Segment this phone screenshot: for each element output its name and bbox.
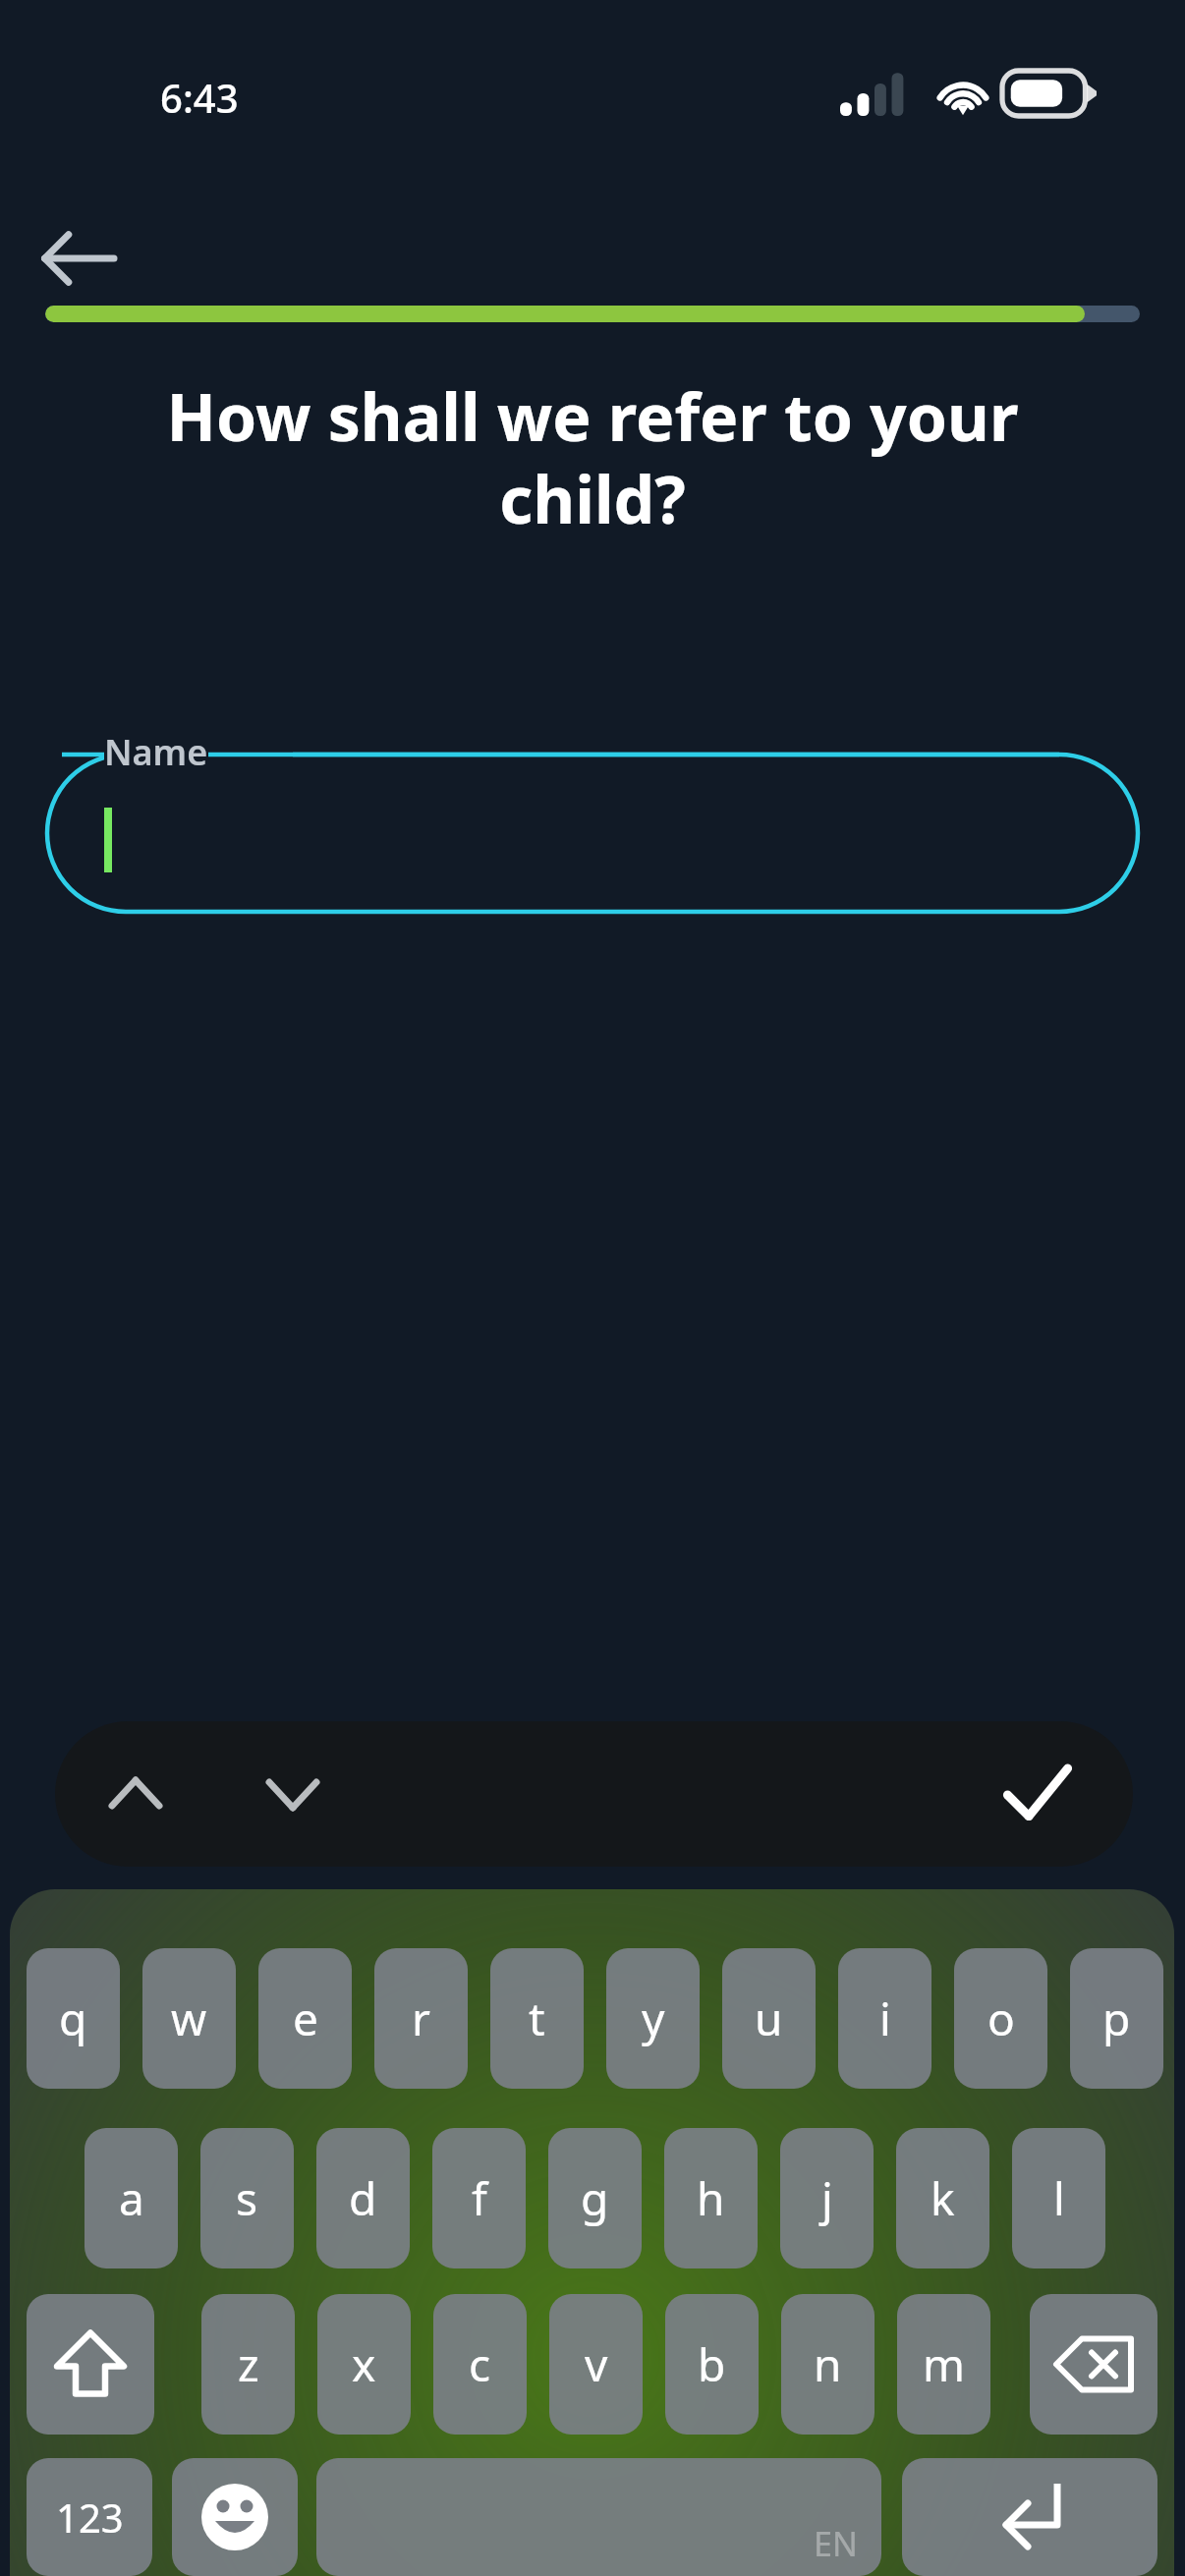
button[interactable]: y [606, 1948, 700, 2089]
button[interactable]: m [897, 2294, 990, 2435]
staticText: o [987, 1988, 1015, 2049]
staticText: b [698, 2333, 726, 2395]
button[interactable]: Space [316, 2458, 881, 2576]
button[interactable]: c [433, 2294, 527, 2435]
button[interactable]: Done [993, 1751, 1082, 1839]
button[interactable]: h [664, 2128, 758, 2268]
button[interactable]: e [258, 1948, 352, 2089]
staticText: f [472, 2167, 487, 2229]
button[interactable]: u [722, 1948, 816, 2089]
staticText: h [697, 2167, 725, 2229]
staticText: u [755, 1988, 783, 2049]
button[interactable]: Previous field [96, 1755, 175, 1833]
button[interactable]: q [27, 1948, 120, 2089]
staticText: Name [104, 728, 208, 776]
button[interactable]: d [316, 2128, 410, 2268]
staticText: g [581, 2167, 609, 2229]
staticText: j [821, 2167, 833, 2229]
button[interactable]: Back [28, 204, 136, 312]
staticText: s [236, 2167, 258, 2229]
button[interactable]: Backspace [1030, 2294, 1157, 2435]
staticText: m [923, 2333, 966, 2395]
button[interactable]: j [780, 2128, 874, 2268]
staticText: y [642, 1988, 665, 2049]
staticText: 6:43 [160, 71, 239, 124]
staticText: i [879, 1988, 891, 2049]
button[interactable]: Enter [902, 2458, 1157, 2576]
button[interactable]: w [142, 1948, 236, 2089]
staticText: EN [814, 2521, 858, 2566]
button[interactable]: t [490, 1948, 584, 2089]
button[interactable]: l [1012, 2128, 1105, 2268]
button[interactable]: z [201, 2294, 295, 2435]
staticText: a [119, 2167, 144, 2229]
button[interactable]: p [1070, 1948, 1163, 2089]
staticText: r [412, 1988, 430, 2049]
button[interactable]: 123 [27, 2458, 152, 2576]
button[interactable]: x [317, 2294, 411, 2435]
staticText: p [1102, 1988, 1131, 2049]
staticText: 123 [56, 2491, 124, 2544]
button[interactable] [47, 755, 1138, 912]
button[interactable]: Shift [27, 2294, 154, 2435]
button[interactable]: a [85, 2128, 178, 2268]
staticText: x [352, 2333, 376, 2395]
button[interactable]: r [374, 1948, 468, 2089]
button[interactable]: v [549, 2294, 643, 2435]
button[interactable]: k [896, 2128, 989, 2268]
staticText: c [469, 2333, 491, 2395]
staticText: How shall we refer to your child? [147, 371, 1038, 542]
staticText: k [931, 2167, 955, 2229]
staticText: z [238, 2333, 259, 2395]
button[interactable]: b [665, 2294, 759, 2435]
button[interactable]: g [548, 2128, 642, 2268]
button[interactable]: n [781, 2294, 875, 2435]
staticText: l [1053, 2167, 1065, 2229]
staticText: e [293, 1988, 318, 2049]
button[interactable]: Next field [254, 1755, 332, 1833]
staticText: q [59, 1988, 87, 2049]
staticText: w [171, 1988, 207, 2049]
button[interactable]: Emoji [172, 2458, 298, 2576]
button[interactable]: o [954, 1948, 1047, 2089]
button[interactable]: i [838, 1948, 931, 2089]
button[interactable]: f [432, 2128, 526, 2268]
staticText: d [349, 2167, 377, 2229]
staticText: v [585, 2333, 608, 2395]
button[interactable]: s [200, 2128, 294, 2268]
staticText: t [529, 1988, 545, 2049]
staticText: n [814, 2333, 842, 2395]
